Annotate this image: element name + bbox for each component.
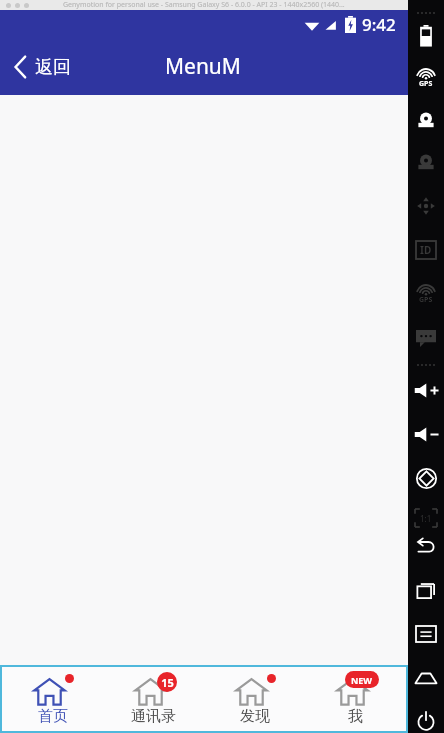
button[interactable]: Power [412, 708, 440, 733]
staticText: 我 [348, 707, 363, 726]
button[interactable]: Menu [412, 620, 440, 648]
button[interactable]: Identifiers [412, 236, 440, 264]
staticText: 9:42 [362, 13, 396, 36]
button[interactable]: NEW [305, 667, 406, 731]
button[interactable]: 返回 [0, 46, 85, 88]
staticText: 返回 [35, 56, 71, 79]
staticText: GPS [419, 295, 433, 305]
staticText: 1:1 [420, 513, 432, 524]
button[interactable]: Volume down [412, 420, 440, 448]
staticText: GPS [419, 79, 433, 89]
staticText: NEW [351, 674, 373, 686]
button[interactable]: Volume up [412, 376, 440, 404]
button[interactable]: Back [412, 532, 440, 560]
button[interactable]: SMS [412, 324, 440, 352]
staticText: 通讯录 [131, 707, 176, 726]
button[interactable]: GPS [412, 64, 440, 92]
button[interactable]: 首页 [2, 667, 103, 731]
staticText: 15 [161, 675, 174, 690]
button[interactable]: Dpad [412, 192, 440, 220]
staticText: Genymotion for personal use - Samsung Ga… [63, 0, 345, 10]
button[interactable]: 发现 [204, 667, 305, 731]
button[interactable]: Rotate [412, 464, 440, 492]
staticText: ID [420, 243, 432, 257]
button[interactable]: Video [412, 148, 440, 176]
button[interactable]: Battery [412, 22, 440, 50]
button[interactable]: One to one [412, 504, 440, 532]
button[interactable]: 15 [103, 667, 204, 731]
staticText: MenuM [165, 52, 241, 81]
staticText: 发现 [240, 707, 270, 726]
button[interactable]: Recents [412, 576, 440, 604]
staticText: 首页 [38, 707, 68, 726]
button[interactable]: Network [412, 280, 440, 308]
button[interactable]: Home [412, 664, 440, 692]
button[interactable]: Camera [412, 106, 440, 134]
